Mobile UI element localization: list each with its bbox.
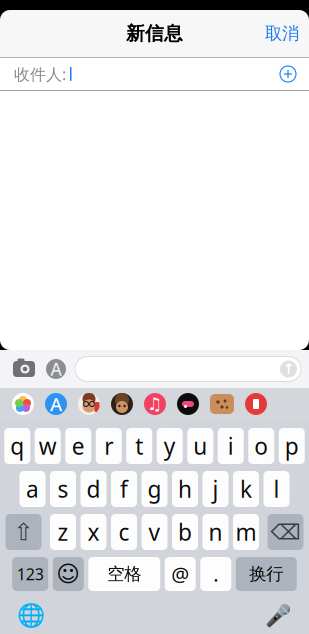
button[interactable]: 音乐 [144,393,166,415]
button[interactable]: e [65,428,91,464]
staticText: f [120,474,128,504]
staticText: m [235,517,256,547]
staticText: z [57,517,68,547]
button[interactable]: 发送 [280,360,297,377]
staticText: a [26,474,39,504]
button[interactable]: 切换键盘 [14,599,48,631]
button[interactable]: 换行 [236,557,297,591]
staticText: ☺ [56,561,80,587]
staticText: e [72,431,85,461]
button[interactable]: 听写 [261,599,295,631]
button[interactable]: App Store [45,393,67,415]
button[interactable]: 拟我表情贴纸 [111,393,133,415]
button[interactable]: 取消 [255,15,309,52]
staticText: b [178,517,192,547]
button[interactable]: b [172,514,198,550]
staticText: u [193,431,207,461]
staticText: 新信息 [126,22,183,45]
staticText: q [10,431,24,461]
button[interactable]: 拟我表情 [78,393,100,415]
button[interactable]: k [233,471,259,507]
button[interactable]: 更多应用 [245,393,267,415]
staticText: A [50,392,62,416]
button[interactable]: m [233,514,259,550]
button[interactable]: y [157,428,183,464]
button[interactable]: z [50,514,76,550]
button[interactable]: a [19,471,45,507]
button[interactable]: 大写 [5,514,41,550]
staticText: @ [171,561,189,587]
staticText: d [86,474,100,504]
staticText: p [285,431,299,461]
staticText: x [87,517,99,547]
button[interactable]: 健身 [177,393,199,415]
button[interactable]: q [4,428,30,464]
staticText: o [254,431,268,461]
button[interactable]: v [141,514,167,550]
staticText: j [212,474,218,504]
staticText: A [50,357,61,380]
button[interactable]: 删除 [267,514,303,550]
button[interactable]: 拍照 [11,358,37,380]
button[interactable]: 照片 [12,393,34,415]
button[interactable]: f [111,471,137,507]
button[interactable]: g [141,471,167,507]
button[interactable]: . [200,557,231,591]
button[interactable]: l [263,471,289,507]
staticText: 收件人: [14,63,66,85]
button[interactable]: s [50,471,76,507]
staticText: . [213,561,218,587]
button[interactable]: 空格 [88,557,160,591]
staticText: 123 [17,563,44,585]
staticText: ⌫ [270,520,300,544]
button[interactable]: 图片 [210,394,234,414]
button[interactable]: i [218,428,244,464]
staticText: ♫ [147,394,163,414]
staticText: n [208,517,222,547]
staticText: w [39,431,57,461]
button[interactable]: o [248,428,274,464]
staticText: g [147,474,161,504]
staticText: ⇧ [13,518,33,546]
button[interactable]: j [202,471,228,507]
staticText: 换行 [249,563,283,585]
staticText: k [240,474,252,504]
staticText: 🎤 [264,603,291,628]
staticText: l [273,474,279,504]
button[interactable]: t [126,428,152,464]
button[interactable]: 表情符号 [53,557,84,591]
button[interactable]: 123 [12,557,48,591]
button[interactable]: App Store [44,358,68,380]
staticText: c [118,517,129,547]
staticText: ↑ [282,361,294,377]
button[interactable]: w [35,428,61,464]
staticText: s [57,474,68,504]
staticText: y [164,431,176,461]
button[interactable]: r [96,428,122,464]
staticText: 取消 [265,23,299,44]
button[interactable]: c [111,514,137,550]
button[interactable]: h [172,471,198,507]
staticText: v [148,517,160,547]
staticText: t [135,431,143,461]
staticText: r [104,431,113,461]
staticText: h [178,474,192,504]
button[interactable]: x [80,514,106,550]
button[interactable]: p [279,428,305,464]
button[interactable]: d [80,471,106,507]
staticText: i [228,431,234,461]
button[interactable]: @ [165,557,196,591]
staticText: 空格 [107,563,141,585]
button[interactable]: u [187,428,213,464]
staticText: 🌐 [17,603,45,628]
button[interactable]: 添加联系人 [275,61,301,87]
button[interactable]: n [202,514,228,550]
